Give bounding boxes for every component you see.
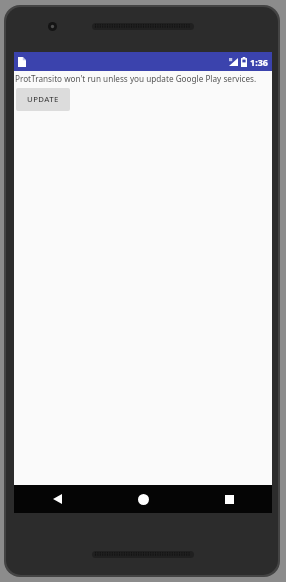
staticText: 1:36 bbox=[250, 56, 268, 68]
staticText: ProtTransito won't run unless you update… bbox=[15, 73, 257, 84]
button[interactable]: Back bbox=[14, 485, 100, 513]
button[interactable]: UPDATE bbox=[16, 88, 70, 111]
staticText: UPDATE bbox=[27, 94, 59, 105]
button[interactable]: Recent apps bbox=[186, 485, 272, 513]
button[interactable]: Home bbox=[100, 485, 186, 513]
